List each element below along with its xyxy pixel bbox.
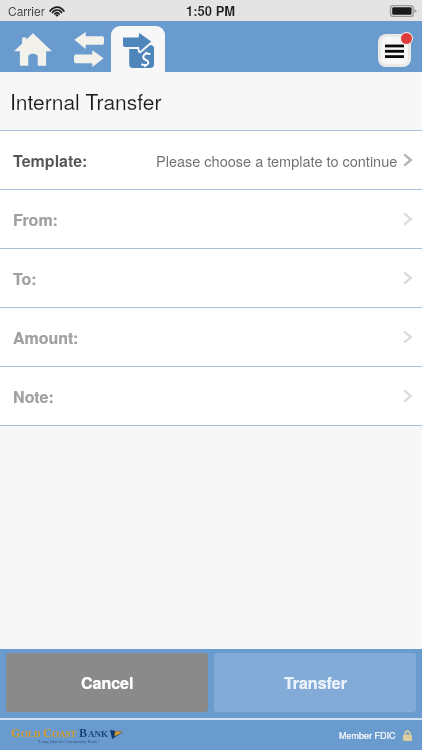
staticText: "Long Island's Community Bank" <box>37 739 100 744</box>
button[interactable]: Transfers <box>66 21 111 72</box>
button[interactable]: Cancel <box>6 653 208 712</box>
staticText: Carrier <box>8 2 45 19</box>
button[interactable]: To: <box>0 249 422 307</box>
staticText: Transfer <box>284 671 347 694</box>
staticText: To: <box>13 267 37 290</box>
button[interactable]: Template: <box>0 131 422 189</box>
staticText: OLD <box>21 729 43 739</box>
button[interactable]: Menu <box>366 21 422 72</box>
staticText: Cancel <box>81 671 134 694</box>
staticText: Internal Transfer <box>10 86 162 116</box>
button[interactable]: Amount: <box>0 308 422 366</box>
staticText: C <box>43 726 52 739</box>
staticText: Note: <box>13 385 54 408</box>
staticText: Member FDIC <box>339 729 396 742</box>
staticText: G <box>11 726 21 739</box>
button[interactable]: Internal transfer <box>111 26 165 72</box>
button[interactable]: Transfer <box>214 653 416 712</box>
staticText: Amount: <box>13 326 79 349</box>
button[interactable]: Note: <box>0 367 422 425</box>
staticText: Template: <box>13 149 88 172</box>
staticText: 1:50 PM <box>186 1 236 20</box>
staticText: B <box>79 726 88 739</box>
button[interactable]: Home <box>0 21 66 72</box>
button[interactable]: From: <box>0 190 422 248</box>
staticText: ANK <box>88 729 108 739</box>
staticText: From: <box>13 208 58 231</box>
staticText: OAST <box>52 729 79 739</box>
staticText: Please choose a template to continue <box>156 150 398 171</box>
